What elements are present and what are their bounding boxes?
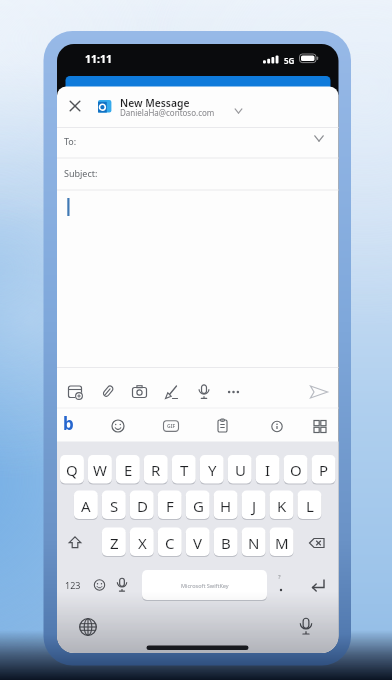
button[interactable]: Q <box>60 455 84 484</box>
staticText: D <box>137 496 148 516</box>
button[interactable]: E <box>116 455 140 484</box>
button[interactable] <box>66 96 86 116</box>
staticText: P <box>319 460 329 480</box>
button[interactable]: D <box>130 491 154 520</box>
button[interactable] <box>89 570 110 600</box>
button[interactable]: N <box>242 528 266 557</box>
staticText: T <box>180 460 189 480</box>
staticText: A <box>81 496 91 516</box>
staticText: 11:11 <box>85 52 112 66</box>
staticText: W <box>93 460 107 480</box>
button[interactable] <box>290 610 322 642</box>
staticText: I <box>265 460 271 480</box>
button[interactable]: M <box>270 528 294 557</box>
button[interactable]: G <box>186 491 210 520</box>
staticText: New Message <box>120 96 190 110</box>
staticText: Y <box>208 460 217 480</box>
button[interactable]: O <box>284 455 308 484</box>
staticText: N <box>248 533 260 553</box>
staticText: Microsoft SwiftKey <box>181 582 229 589</box>
button[interactable] <box>65 382 85 402</box>
button[interactable] <box>309 415 331 437</box>
staticText: U <box>235 460 246 480</box>
button[interactable] <box>130 382 150 402</box>
button[interactable] <box>266 415 288 437</box>
button[interactable] <box>161 382 181 402</box>
button[interactable]: 123 <box>58 570 88 600</box>
staticText: ? <box>278 573 281 581</box>
button[interactable] <box>107 415 129 437</box>
staticText: J <box>252 496 257 516</box>
button[interactable]: New Message <box>95 90 245 120</box>
button[interactable]: P <box>312 455 336 484</box>
button[interactable] <box>160 415 182 437</box>
staticText: X <box>138 533 147 553</box>
button[interactable] <box>303 527 335 555</box>
button[interactable] <box>72 610 104 642</box>
button[interactable] <box>111 570 132 600</box>
button[interactable]: Y <box>200 455 224 484</box>
button[interactable]: S <box>102 491 126 520</box>
staticText: To: <box>64 135 77 147</box>
button[interactable]: X <box>130 528 154 557</box>
button[interactable]: U <box>228 455 252 484</box>
button[interactable]: I <box>256 455 280 484</box>
staticText: Q <box>66 460 78 480</box>
button[interactable] <box>212 415 234 437</box>
button[interactable]: H <box>214 491 238 520</box>
staticText: L <box>306 496 314 516</box>
staticText: GIF <box>167 423 176 430</box>
staticText: b <box>63 412 74 435</box>
button[interactable] <box>309 382 329 402</box>
button[interactable]: A <box>74 491 98 520</box>
button[interactable] <box>194 382 214 402</box>
button[interactable]: T <box>172 455 196 484</box>
staticText: K <box>277 496 287 516</box>
button[interactable]: Microsoft SwiftKey <box>142 570 267 600</box>
staticText: S <box>110 496 119 516</box>
staticText: R <box>151 460 161 480</box>
button[interactable] <box>98 382 118 402</box>
button[interactable]: B <box>214 528 238 557</box>
staticText: 5G <box>284 55 295 66</box>
staticText: V <box>193 533 203 553</box>
button[interactable]: Subject: <box>57 158 338 189</box>
staticText: Subject: <box>64 167 98 179</box>
staticText: E <box>124 460 133 480</box>
button[interactable] <box>295 570 335 600</box>
button[interactable] <box>60 527 92 555</box>
button[interactable]: F <box>158 491 182 520</box>
staticText: B <box>221 533 231 553</box>
staticText: G <box>193 496 204 516</box>
staticText: H <box>220 496 232 516</box>
button[interactable]: b <box>62 414 84 438</box>
staticText: Z <box>110 533 119 553</box>
button[interactable]: L <box>298 491 322 520</box>
staticText: 123 <box>65 579 81 591</box>
button[interactable]: K <box>270 491 294 520</box>
button[interactable] <box>224 382 244 402</box>
button[interactable]: R <box>144 455 168 484</box>
staticText: F <box>166 496 174 516</box>
staticText: M <box>275 533 289 553</box>
button[interactable]: V <box>186 528 210 557</box>
staticText: C <box>165 533 175 553</box>
button[interactable]: To: <box>57 128 338 157</box>
button[interactable]: C <box>158 528 182 557</box>
button[interactable]: Z <box>102 528 126 557</box>
button[interactable]: J <box>242 491 266 520</box>
staticText: O <box>290 460 302 480</box>
staticText: DanielaHa@contoso.com <box>120 107 215 118</box>
button[interactable]: W <box>88 455 112 484</box>
